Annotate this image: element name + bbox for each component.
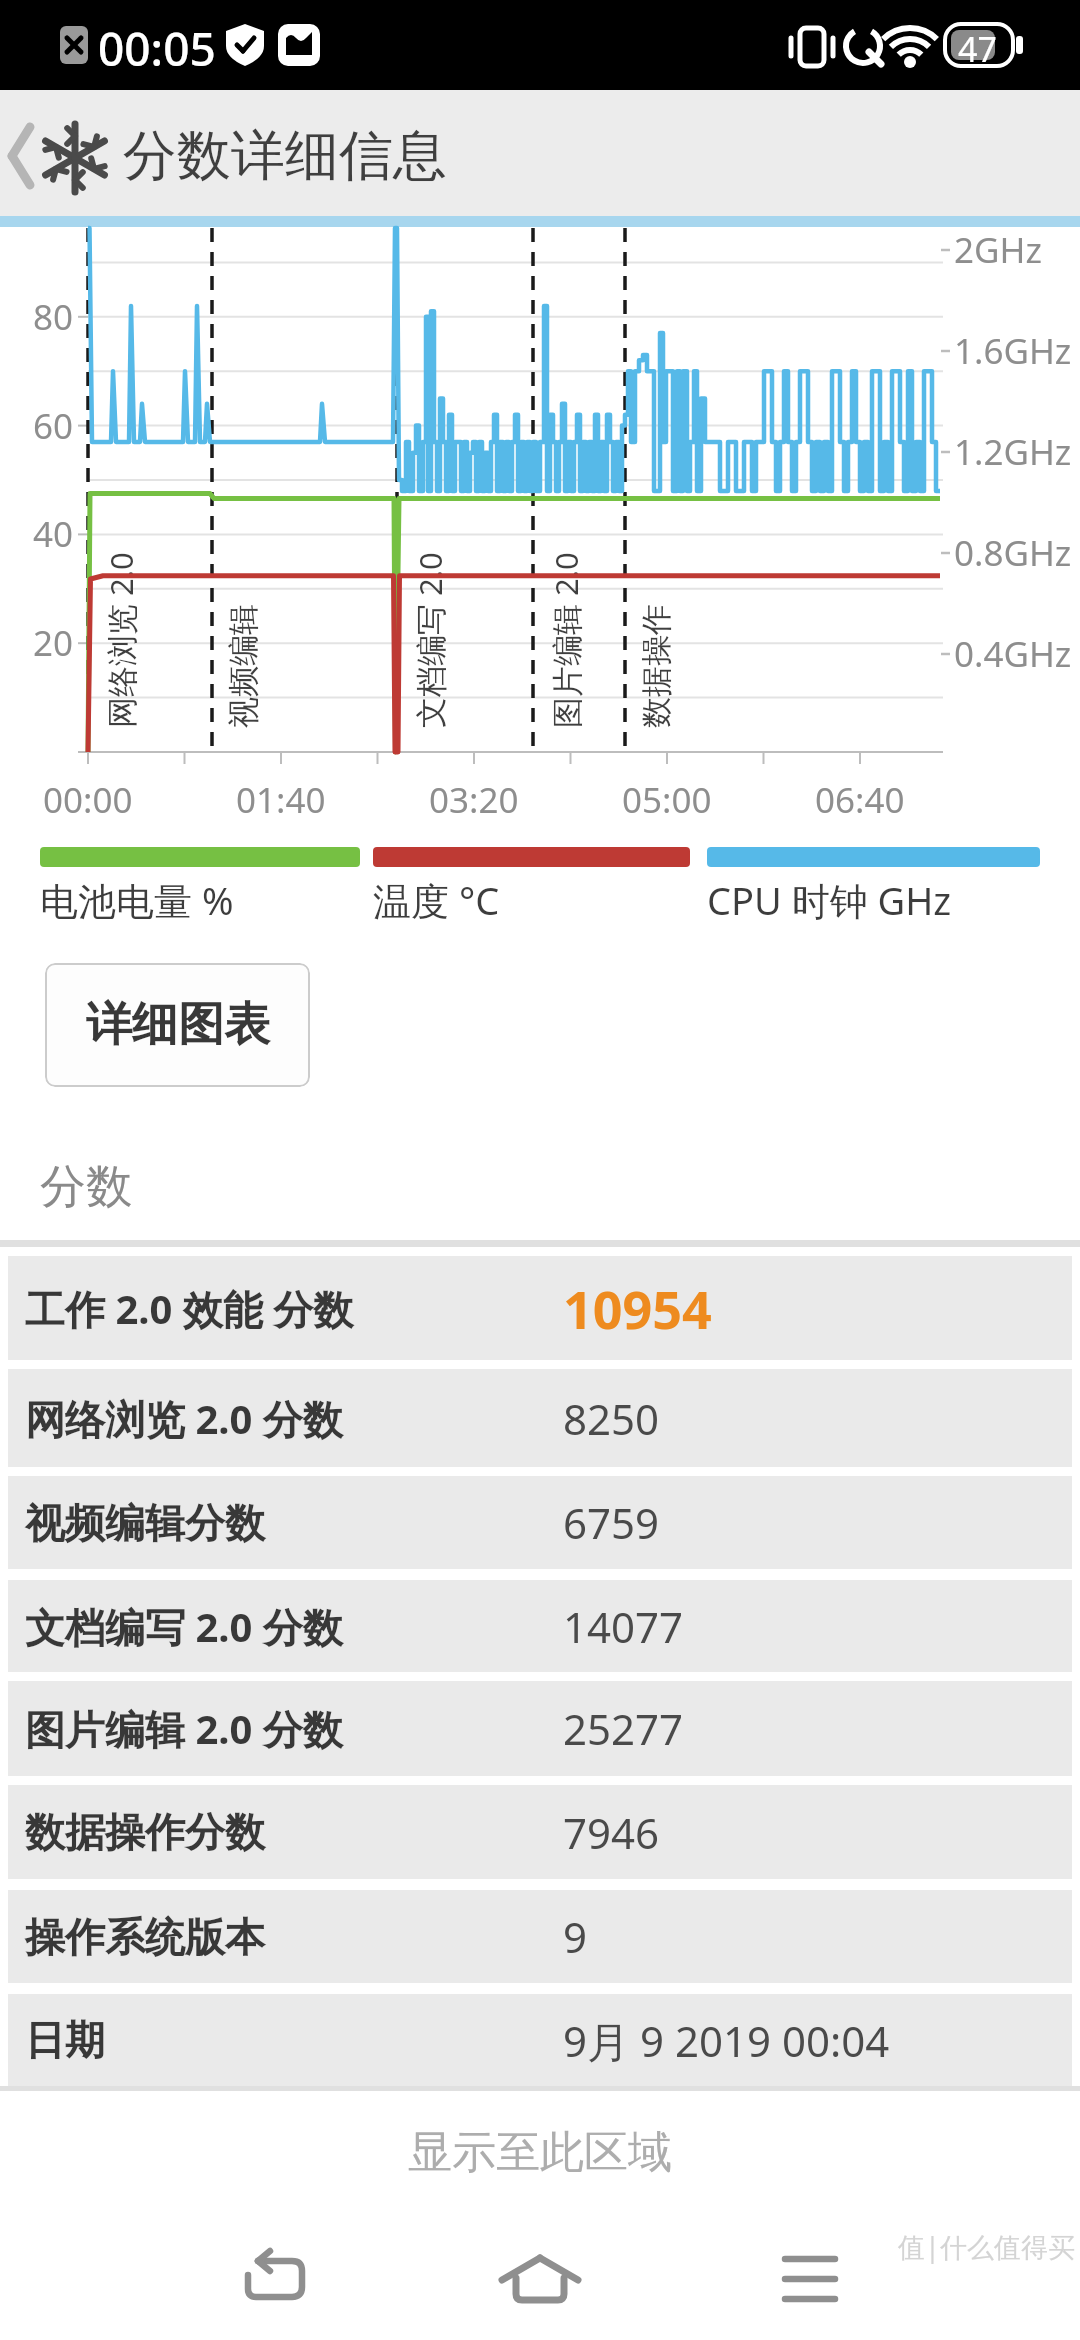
button[interactable]	[755, 2224, 865, 2334]
staticText: 00:05	[98, 17, 216, 80]
button[interactable]: 工作 2.0 效能 分数	[8, 1256, 1072, 1360]
staticText: 视频编辑分数	[25, 1498, 265, 1548]
button[interactable]: 文档编写 2.0 分数	[8, 1580, 1072, 1672]
button[interactable]: 数据操作分数	[8, 1785, 1072, 1879]
button[interactable]: 网络浏览 2.0 分数	[8, 1369, 1072, 1467]
staticText: 8250	[563, 1390, 660, 1447]
staticText: 6759	[563, 1494, 660, 1551]
staticText: 分数	[40, 1158, 132, 1216]
staticText: 日期	[25, 2015, 105, 2065]
button[interactable]: 图片编辑 2.0 分数	[8, 1681, 1072, 1776]
staticText: 7946	[563, 1804, 660, 1861]
staticText: 10954	[563, 1273, 712, 1344]
staticText: 网络浏览 2.0 分数	[25, 1391, 343, 1446]
button[interactable]: 操作系统版本	[8, 1890, 1072, 1983]
staticText: 操作系统版本	[25, 1912, 265, 1962]
staticText: 电池电量 %	[40, 874, 234, 926]
staticText: 文档编写 2.0 分数	[25, 1599, 343, 1654]
button[interactable]: 日期	[8, 1994, 1072, 2086]
staticText: 分数详细信息	[123, 122, 447, 190]
staticText: 显示至此区域	[408, 2125, 672, 2180]
staticText: 14077	[563, 1598, 684, 1655]
staticText: 值|什么值得买	[898, 2228, 1075, 2265]
button[interactable]: 详细图表	[45, 963, 310, 1087]
staticText: 47	[958, 26, 997, 72]
button[interactable]: 视频编辑分数	[8, 1476, 1072, 1569]
staticText: 图片编辑 2.0 分数	[25, 1701, 343, 1756]
staticText: 工作 2.0 效能 分数	[25, 1281, 354, 1336]
staticText: 详细图表	[86, 996, 270, 1054]
staticText: 25277	[563, 1700, 684, 1757]
button[interactable]	[220, 2224, 330, 2334]
staticText: CPU 时钟 GHz	[707, 874, 952, 926]
staticText: 9	[563, 1908, 588, 1965]
button[interactable]	[0, 90, 120, 216]
staticText: 9月 9 2019 00:04	[563, 2012, 890, 2069]
staticText: 数据操作分数	[25, 1807, 265, 1857]
staticText: 温度 °C	[373, 874, 500, 926]
button[interactable]	[485, 2224, 595, 2334]
